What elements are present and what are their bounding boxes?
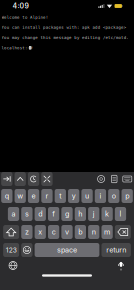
- staticText: a: [11, 210, 15, 218]
- staticText: f: [52, 210, 55, 218]
- button[interactable]: f: [48, 207, 59, 221]
- button[interactable]: o: [108, 189, 119, 203]
- staticText: 4:09: [12, 2, 28, 10]
- button[interactable]: Hide keyboard: [122, 172, 133, 186]
- staticText: k: [105, 210, 109, 218]
- button[interactable]: Settings: [96, 172, 107, 186]
- button[interactable]: Escape: [41, 172, 53, 186]
- button[interactable]: x: [35, 225, 46, 239]
- staticText: s: [25, 210, 29, 218]
- staticText: x: [38, 228, 42, 236]
- staticText: d: [38, 210, 42, 218]
- button[interactable]: u: [81, 189, 93, 203]
- staticText: 123: [6, 246, 17, 254]
- staticText: space: [57, 246, 77, 254]
- staticText: t: [59, 192, 61, 200]
- button[interactable]: t: [55, 189, 66, 203]
- button[interactable]: j: [88, 207, 99, 221]
- staticText: localhost:~#: [1, 45, 32, 50]
- staticText: g: [65, 210, 69, 218]
- button[interactable]: h: [75, 207, 86, 221]
- button[interactable]: z: [21, 225, 33, 239]
- button[interactable]: s: [21, 207, 33, 221]
- button[interactable]: History: [28, 172, 39, 186]
- button[interactable]: q: [1, 189, 12, 203]
- button[interactable]: e: [28, 189, 39, 203]
- button[interactable]: w: [15, 189, 26, 203]
- staticText: e: [32, 192, 36, 200]
- staticText: j: [93, 210, 95, 218]
- staticText: p: [125, 192, 129, 200]
- staticText: c: [52, 228, 56, 236]
- staticText: y: [72, 192, 76, 200]
- button[interactable]: b: [75, 225, 86, 239]
- button[interactable]: Pages: [109, 172, 120, 186]
- button[interactable]: Delete: [115, 225, 131, 239]
- staticText: n: [92, 228, 96, 236]
- staticText: u: [85, 192, 89, 200]
- button[interactable]: Next keyboard: [6, 258, 20, 272]
- staticText: You can install packages with: apk add <…: [1, 25, 126, 30]
- button[interactable]: n: [88, 225, 99, 239]
- staticText: v: [65, 228, 69, 236]
- button[interactable]: p: [121, 189, 133, 203]
- button[interactable]: Dictation: [114, 258, 128, 272]
- button[interactable]: v: [61, 225, 73, 239]
- button[interactable]: Tab: [1, 172, 12, 186]
- button[interactable]: c: [48, 225, 59, 239]
- staticText: z: [25, 228, 29, 236]
- button[interactable]: d: [35, 207, 46, 221]
- button[interactable]: i: [95, 189, 106, 203]
- button[interactable]: k: [101, 207, 113, 221]
- staticText: Welcome to Alpine!: [1, 15, 48, 20]
- button[interactable]: r: [41, 189, 53, 203]
- button[interactable]: Shift: [3, 225, 19, 239]
- staticText: q: [5, 192, 9, 200]
- button[interactable]: space: [35, 243, 99, 257]
- staticText: i: [99, 192, 101, 200]
- staticText: w: [17, 192, 23, 200]
- button[interactable]: y: [68, 189, 79, 203]
- button[interactable]: a: [8, 207, 19, 221]
- staticText: h: [78, 210, 82, 218]
- button[interactable]: Up: [15, 172, 26, 186]
- button[interactable]: g: [61, 207, 73, 221]
- staticText: b: [78, 228, 82, 236]
- button[interactable]: return: [101, 243, 131, 257]
- button[interactable]: l: [115, 207, 126, 221]
- staticText: return: [106, 246, 126, 254]
- staticText: You may change this message by editing /…: [1, 35, 128, 40]
- staticText: l: [119, 210, 121, 218]
- button[interactable]: 123: [3, 243, 19, 257]
- button[interactable]: m: [101, 225, 113, 239]
- button[interactable]: Emoji: [21, 243, 33, 257]
- staticText: m: [104, 228, 110, 236]
- staticText: r: [45, 192, 48, 200]
- staticText: o: [112, 192, 116, 200]
